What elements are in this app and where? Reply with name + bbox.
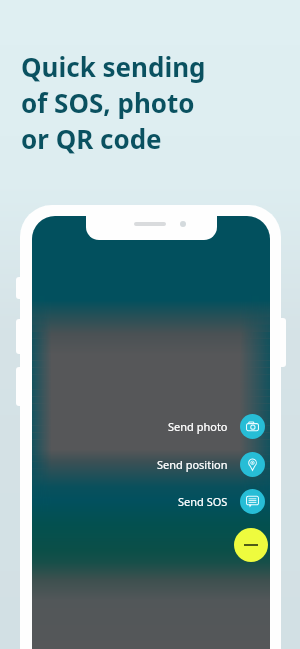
button[interactable]: Send photo — [168, 414, 265, 439]
button[interactable]: Send position — [157, 452, 265, 477]
staticText: Send photo — [168, 419, 228, 434]
staticText: Send position — [157, 457, 228, 472]
button[interactable]: Close menu — [234, 528, 268, 562]
staticText: Send SOS — [178, 494, 228, 509]
button[interactable]: Send SOS — [178, 489, 265, 514]
staticText: Quick sending of SOS, photo or QR code — [21, 49, 206, 157]
